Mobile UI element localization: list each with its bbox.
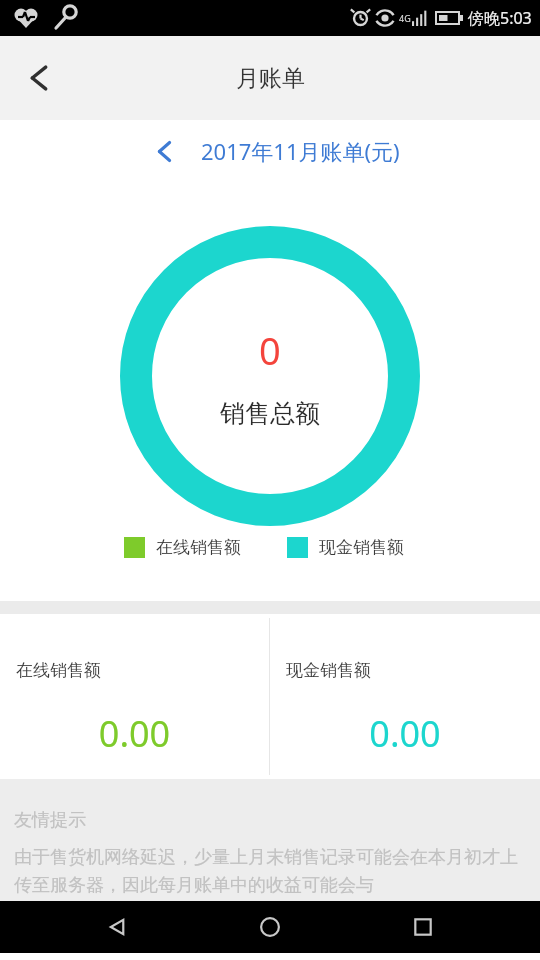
staticText: 4G [399, 12, 411, 24]
staticText: 在线销售额 [16, 660, 101, 681]
staticText: 月账单 [236, 64, 305, 93]
staticText: 现金销售额 [319, 537, 404, 558]
button[interactable]: Recent apps [388, 901, 458, 953]
button[interactable]: Home [235, 901, 305, 953]
staticText: 在线销售额 [156, 537, 241, 558]
staticText: 0 [259, 324, 281, 376]
staticText: 傍晚5:03 [468, 7, 532, 29]
button[interactable]: 现金销售额 [270, 614, 540, 779]
button[interactable]: 2017年11月账单(元) [201, 136, 400, 166]
staticText: 0.00 [16, 709, 253, 758]
staticText: 0.00 [286, 709, 524, 758]
button[interactable]: Previous month [141, 128, 187, 174]
staticText: 现金销售额 [286, 660, 371, 681]
staticText: 友情提示 [14, 809, 86, 832]
button[interactable]: 在线销售额 [0, 614, 269, 779]
staticText: 销售总额 [220, 398, 320, 429]
button[interactable]: Back [8, 47, 70, 109]
staticText: 由于售货机网络延迟，少量上月末销售记录可能会在本月初才上传至服务器，因此每月账单… [14, 846, 526, 896]
button[interactable]: Back [83, 901, 153, 953]
